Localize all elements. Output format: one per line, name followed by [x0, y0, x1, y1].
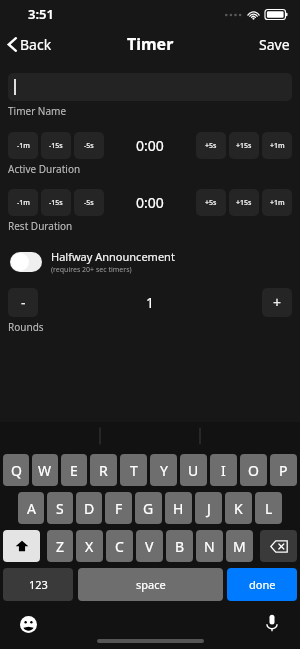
button[interactable]: E: [61, 454, 87, 486]
staticText: 3:51: [28, 5, 54, 23]
button[interactable]: +5s: [196, 189, 226, 216]
button[interactable]: C: [106, 530, 133, 562]
button[interactable]: Delete: [260, 530, 297, 562]
button[interactable]: W: [32, 454, 58, 486]
button[interactable]: B: [166, 530, 193, 562]
staticText: I: [221, 461, 226, 480]
button[interactable]: -15s: [41, 189, 71, 216]
button[interactable]: -5s: [74, 189, 104, 216]
staticText: 0:00: [136, 136, 164, 155]
button[interactable]: +5s: [196, 132, 226, 159]
button[interactable]: done: [227, 568, 297, 601]
button[interactable]: L: [255, 492, 282, 524]
staticText: V: [145, 537, 154, 556]
button[interactable]: Back: [0, 30, 62, 59]
staticText: Save: [259, 35, 290, 54]
staticText: +1m: [270, 198, 285, 208]
button[interactable]: S: [47, 492, 73, 524]
button[interactable]: +1m: [262, 132, 292, 159]
button[interactable]: Q: [3, 454, 29, 486]
staticText: W: [38, 461, 52, 480]
staticText: O: [248, 461, 259, 480]
staticText: P: [279, 461, 288, 480]
staticText: G: [143, 499, 154, 518]
button[interactable]: H: [165, 492, 192, 524]
staticText: Rest Duration: [8, 219, 73, 233]
staticText: Rounds: [8, 320, 44, 334]
button[interactable]: +15s: [229, 132, 259, 159]
button[interactable]: [8, 73, 292, 101]
staticText: M: [233, 537, 246, 556]
staticText: H: [173, 499, 184, 518]
button[interactable]: -1m: [8, 189, 38, 216]
staticText: L: [265, 499, 273, 518]
button[interactable]: 123: [3, 568, 73, 601]
staticText: Timer: [127, 33, 174, 55]
staticText: +5s: [205, 198, 217, 208]
staticText: X: [85, 537, 94, 556]
staticText: K: [234, 499, 243, 518]
staticText: U: [188, 461, 199, 480]
staticText: F: [115, 499, 123, 518]
button[interactable]: P: [270, 454, 297, 486]
button[interactable]: K: [225, 492, 252, 524]
staticText: Active Duration: [8, 162, 81, 176]
staticText: -15s: [49, 198, 63, 208]
button[interactable]: Z: [47, 530, 73, 562]
button[interactable]: Increase rounds: [262, 288, 292, 317]
staticText: B: [175, 537, 185, 556]
button[interactable]: R: [90, 454, 117, 486]
button[interactable]: Emoji: [17, 613, 39, 635]
button[interactable]: G: [135, 492, 162, 524]
staticText: Z: [56, 537, 65, 556]
button[interactable]: T: [120, 454, 147, 486]
staticText: A: [27, 499, 36, 518]
button[interactable]: Save: [249, 30, 300, 59]
staticText: -1m: [17, 141, 30, 151]
button[interactable]: N: [196, 530, 223, 562]
staticText: 123: [29, 577, 48, 592]
staticText: -5s: [84, 198, 94, 208]
staticText: Back: [20, 35, 52, 54]
staticText: +5s: [205, 141, 217, 151]
button[interactable]: D: [76, 492, 102, 524]
staticText: Y: [160, 461, 168, 480]
staticText: E: [70, 461, 78, 480]
button[interactable]: M: [226, 530, 253, 562]
staticText: Halfway Announcement: [51, 249, 175, 264]
staticText: (requires 20+ sec timers): [51, 265, 132, 275]
staticText: T: [130, 461, 138, 480]
button[interactable]: X: [76, 530, 103, 562]
staticText: R: [99, 461, 108, 480]
staticText: Q: [11, 461, 22, 480]
staticText: +15s: [236, 198, 252, 208]
button[interactable]: -5s: [74, 132, 104, 159]
staticText: 0:00: [136, 193, 164, 212]
button[interactable]: -15s: [41, 132, 71, 159]
staticText: C: [115, 537, 124, 556]
button[interactable]: A: [18, 492, 44, 524]
button[interactable]: Dictate: [261, 612, 283, 634]
staticText: S: [56, 499, 64, 518]
button[interactable]: O: [240, 454, 267, 486]
staticText: +: [273, 293, 282, 312]
button[interactable]: Halfway Announcement: [0, 247, 300, 277]
button[interactable]: V: [136, 530, 163, 562]
button[interactable]: U: [180, 454, 207, 486]
staticText: done: [249, 577, 276, 592]
staticText: space: [136, 577, 166, 592]
staticText: -: [21, 293, 26, 312]
button[interactable]: F: [105, 492, 132, 524]
button[interactable]: J: [195, 492, 222, 524]
button[interactable]: +1m: [262, 189, 292, 216]
button[interactable]: Shift: [3, 530, 40, 562]
button[interactable]: -1m: [8, 132, 38, 159]
staticText: N: [204, 537, 215, 556]
staticText: +1m: [270, 141, 285, 151]
button[interactable]: Y: [150, 454, 177, 486]
button[interactable]: Decrease rounds: [8, 288, 38, 317]
button[interactable]: I: [210, 454, 237, 486]
staticText: J: [207, 499, 211, 518]
button[interactable]: space: [78, 568, 223, 601]
button[interactable]: +15s: [229, 189, 259, 216]
